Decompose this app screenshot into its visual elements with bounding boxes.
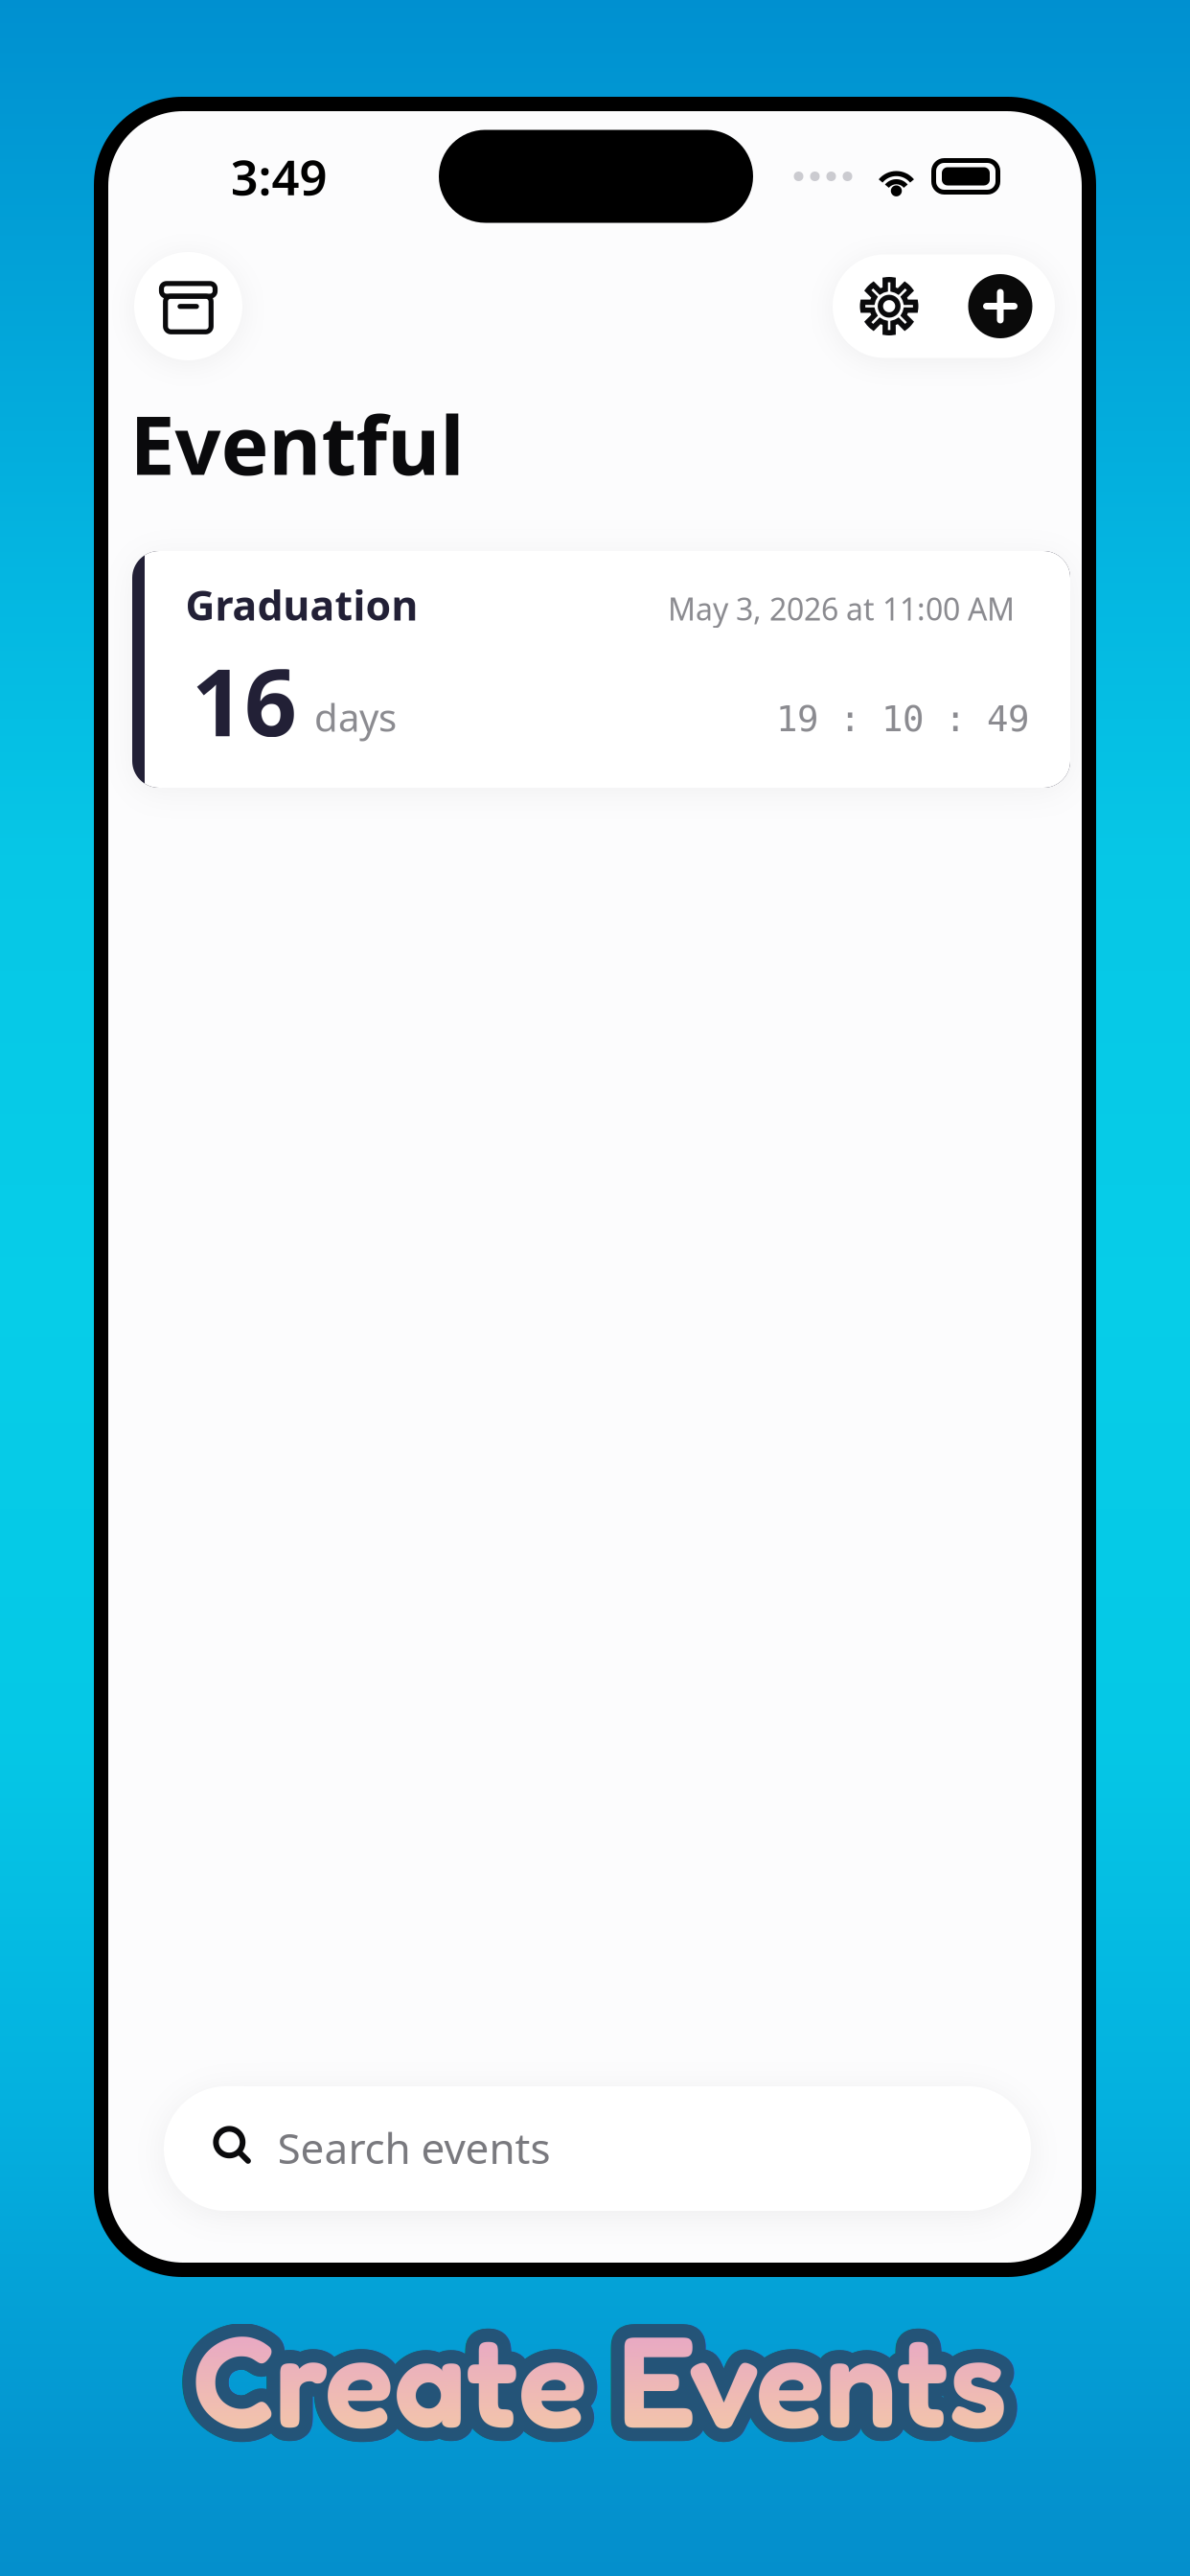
staticText: 16 [192,639,297,762]
staticText: Create Events [206,2300,1020,2454]
staticText: Create Events [206,2305,1020,2459]
staticText: Create Events [180,2297,995,2452]
staticText: Create Events [187,2315,1002,2469]
staticText: Create Events [187,2290,1002,2444]
staticText: Create Events [190,2315,1004,2470]
staticText: Create Events [195,2289,1010,2444]
staticText: Create Events [183,2312,998,2466]
staticText: Create Events [185,2313,1000,2468]
staticText: Create Events [195,2315,1010,2470]
staticText: Eventful [130,390,464,497]
staticText: Create Events [193,2289,1007,2443]
staticText: 19 : 10 : 49 [776,698,1029,739]
staticText: 3:49 [230,144,327,209]
staticText: days [314,691,397,742]
button[interactable]: Settings [833,254,946,358]
staticText: Create Events [202,2312,1016,2466]
staticText: Create Events [205,2297,1019,2452]
staticText: Search events [277,2120,550,2176]
staticText: Create Events [200,2291,1014,2446]
staticText: Create Events [179,2302,994,2457]
staticText: Create Events [190,2289,1004,2444]
staticText: Create Events [185,2291,1000,2446]
staticText: Create Events [206,2302,1020,2457]
staticText: Create Events [204,2310,1018,2464]
staticText: Create Events [179,2300,994,2454]
staticText: Create Events [198,2290,1012,2444]
button[interactable]: Add event [946,254,1055,358]
staticText: Create Events [183,2293,998,2447]
staticText: Create Events [179,2305,994,2459]
staticText: Create Events [198,2315,1012,2469]
staticText: Create Events [181,2310,996,2464]
staticText: Graduation [185,578,418,632]
staticText: Create Events [202,2293,1016,2447]
staticText: Create Events [180,2307,995,2462]
staticText: Create Events [204,2295,1018,2449]
staticText: Create Events [193,2316,1007,2470]
staticText: May 3, 2026 at 11:00 AM [668,588,1015,629]
button[interactable]: Archive [134,252,242,360]
staticText: Create Events [181,2295,996,2449]
button[interactable]: Graduation [132,551,1070,788]
staticText: Create Events [200,2313,1014,2468]
button[interactable]: Search events [164,2086,1031,2211]
staticText: Create Events [205,2307,1019,2462]
